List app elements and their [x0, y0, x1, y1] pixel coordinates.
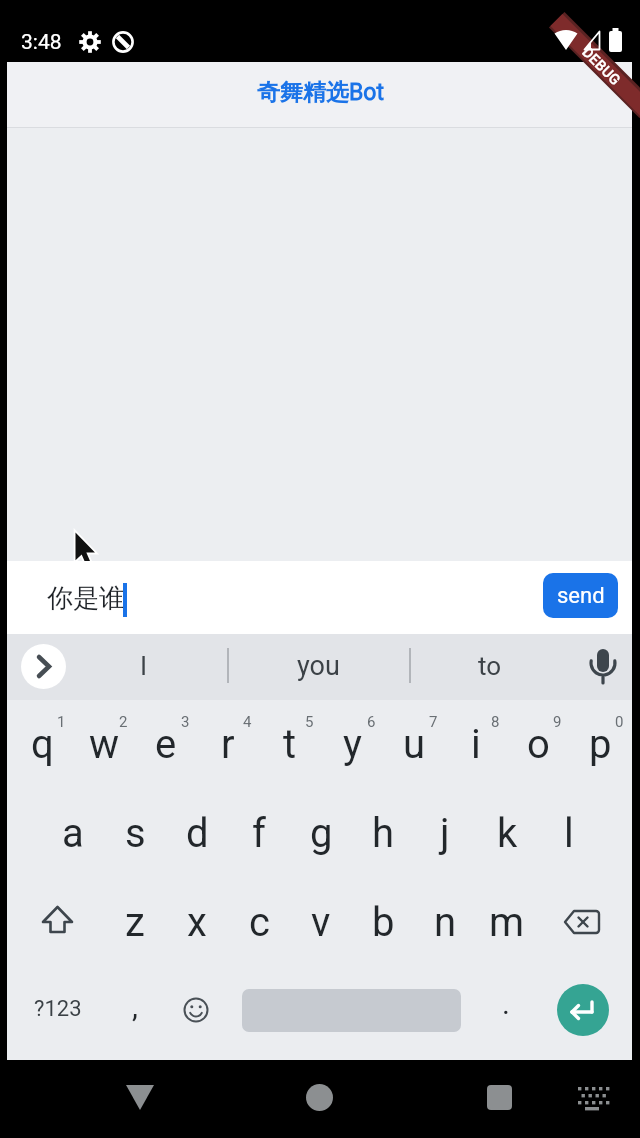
staticText: o	[527, 721, 550, 768]
button[interactable]: j	[414, 798, 476, 868]
staticText: c	[249, 899, 270, 946]
staticText: 9	[553, 713, 562, 731]
button[interactable]: a	[42, 798, 104, 868]
button[interactable]: i	[445, 709, 507, 779]
button[interactable]: c	[228, 887, 290, 957]
staticText: to	[478, 651, 502, 681]
staticText: y	[343, 721, 362, 768]
button[interactable]: you	[263, 641, 373, 691]
staticText: m	[489, 899, 525, 946]
staticText: z	[125, 899, 145, 946]
staticText: I	[140, 651, 148, 681]
button[interactable]	[124, 1082, 156, 1114]
staticText: p	[589, 721, 612, 768]
button[interactable]	[178, 992, 214, 1028]
button[interactable]: b	[352, 887, 414, 957]
button[interactable]: send	[543, 573, 618, 618]
staticText: r	[221, 721, 235, 768]
button[interactable]: v	[290, 887, 352, 957]
staticText: 0	[615, 713, 624, 731]
staticText: 你是谁	[47, 582, 125, 615]
staticText: k	[497, 810, 518, 857]
button[interactable]	[574, 1083, 610, 1113]
staticText: 2	[119, 713, 128, 731]
staticText: b	[372, 899, 395, 946]
staticText: you	[297, 650, 340, 682]
staticText: x	[187, 899, 207, 946]
button[interactable]: d	[166, 798, 228, 868]
staticText: f	[252, 810, 266, 857]
staticText: l	[564, 810, 574, 857]
staticText: s	[125, 810, 146, 857]
staticText: g	[310, 810, 333, 857]
button[interactable]	[560, 901, 608, 943]
button[interactable]	[487, 1085, 512, 1110]
button[interactable]: ?123	[18, 984, 98, 1034]
button[interactable]: x	[166, 887, 228, 957]
staticText: 7	[429, 713, 438, 731]
button[interactable]: u	[383, 709, 445, 779]
staticText: send	[557, 583, 605, 609]
staticText: ,	[132, 989, 138, 1024]
staticText: d	[186, 810, 209, 857]
button[interactable]	[21, 644, 66, 689]
button[interactable]	[586, 646, 620, 688]
button[interactable]: l	[538, 798, 600, 868]
button[interactable]: h	[352, 798, 414, 868]
staticText: v	[311, 899, 331, 946]
button[interactable]: w	[73, 709, 135, 779]
staticText: a	[62, 810, 84, 857]
staticText: e	[155, 721, 177, 768]
button[interactable]: o	[507, 709, 569, 779]
button[interactable]: .	[486, 978, 526, 1028]
button[interactable]	[557, 984, 609, 1036]
button[interactable]: ,	[115, 981, 155, 1031]
staticText: .	[502, 986, 510, 1021]
staticText: w	[89, 721, 120, 768]
staticText: 5	[305, 713, 314, 731]
staticText: 4	[243, 713, 252, 731]
button[interactable]: z	[104, 887, 166, 957]
button[interactable]: r	[197, 709, 259, 779]
button[interactable]: to	[445, 641, 535, 691]
staticText: h	[372, 810, 395, 857]
button[interactable]: I	[99, 641, 189, 691]
staticText: q	[31, 721, 54, 768]
staticText: j	[440, 810, 450, 857]
staticText: 奇舞精选Bot	[257, 78, 384, 107]
button[interactable]: y	[321, 709, 383, 779]
staticText: 6	[367, 713, 376, 731]
button[interactable]: k	[476, 798, 538, 868]
button[interactable]: m	[476, 887, 538, 957]
button[interactable]: p	[569, 709, 631, 779]
staticText: u	[403, 721, 426, 768]
button[interactable]: s	[104, 798, 166, 868]
button[interactable]	[35, 900, 80, 945]
staticText: 1	[57, 713, 66, 731]
staticText: ?123	[34, 996, 82, 1022]
staticText: t	[283, 721, 297, 768]
staticText: 8	[491, 713, 500, 731]
button[interactable]	[0, 561, 640, 634]
button[interactable]: g	[290, 798, 352, 868]
button[interactable]: e	[135, 709, 197, 779]
staticText: i	[471, 721, 481, 768]
button[interactable]: f	[228, 798, 290, 868]
staticText: n	[434, 899, 457, 946]
staticText: DEBUG	[579, 44, 624, 88]
button[interactable]	[306, 1084, 333, 1111]
staticText: 3	[181, 713, 190, 731]
button[interactable]: t	[259, 709, 321, 779]
button[interactable]: n	[414, 887, 476, 957]
staticText: 3:48	[21, 30, 62, 55]
button[interactable]: q	[11, 709, 73, 779]
